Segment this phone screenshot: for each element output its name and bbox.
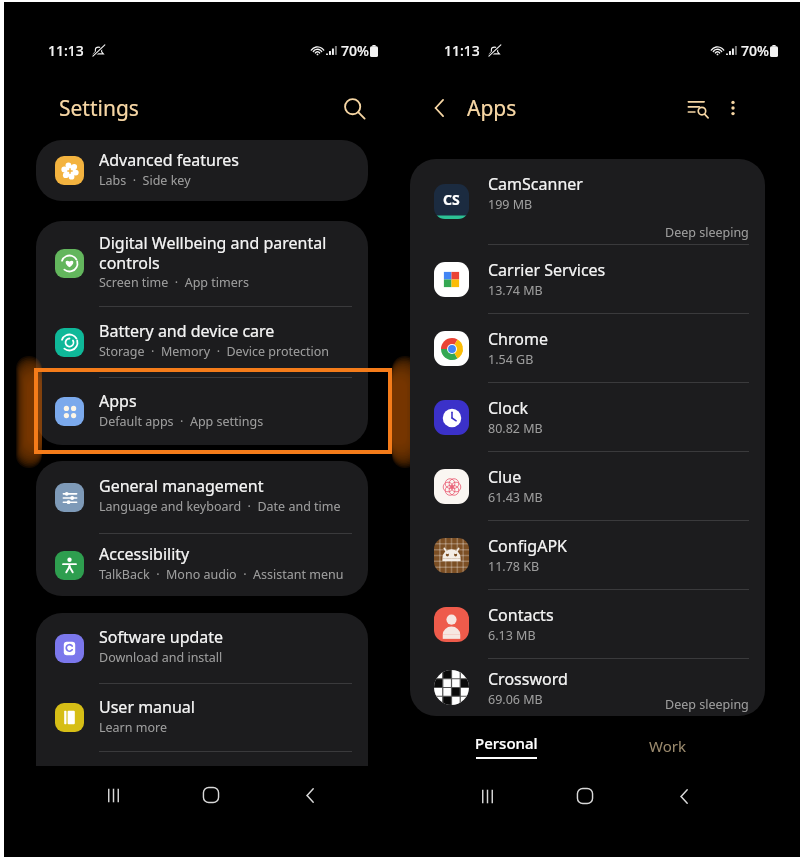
staticText: Clue <box>488 466 522 488</box>
button[interactable]: Back <box>662 774 706 818</box>
button[interactable]: Apps <box>36 378 368 445</box>
button[interactable]: Accessibility <box>36 534 368 596</box>
staticText: Apps <box>99 390 137 412</box>
staticText: CS <box>443 190 460 209</box>
button[interactable]: ConfigAPK <box>410 521 765 589</box>
button[interactable]: Clue <box>410 452 765 520</box>
staticText: Advanced features <box>99 149 239 171</box>
button[interactable]: User manual <box>36 684 368 751</box>
button[interactable]: Sort and search <box>680 90 716 126</box>
staticText: Chrome <box>488 328 548 350</box>
button[interactable]: Software update <box>36 613 368 683</box>
staticText: Digital Wellbeing and parental controls <box>99 232 327 273</box>
button[interactable]: Recents <box>91 773 135 817</box>
button[interactable]: General management <box>36 461 368 533</box>
button[interactable]: Home <box>189 773 233 817</box>
staticText: 11.78 KB <box>488 558 540 575</box>
staticText: TalkBack · Mono audio · Assistant menu <box>99 566 344 583</box>
staticText: 11:13 <box>48 41 84 60</box>
staticText: User manual <box>99 696 195 718</box>
staticText: Software update <box>99 626 224 648</box>
staticText: CamScanner <box>488 173 583 195</box>
button[interactable]: Work <box>607 716 727 776</box>
staticText: 6.13 MB <box>488 627 536 644</box>
button[interactable]: Digital Wellbeing and parental controls <box>36 221 368 306</box>
staticText: ConfigAPK <box>488 535 567 557</box>
staticText: Clock <box>488 397 529 419</box>
staticText: Battery and device care <box>99 320 275 342</box>
staticText: Crossword <box>488 668 568 690</box>
button[interactable]: Remote support <box>36 752 368 820</box>
staticText: 11:13 <box>444 41 480 60</box>
staticText: Accessibility <box>99 543 190 565</box>
staticText: Carrier Services <box>488 259 606 281</box>
button[interactable]: Crossword <box>410 659 765 716</box>
staticText: Deep sleeping <box>665 224 749 241</box>
button[interactable]: Contacts <box>410 590 765 658</box>
staticText: Remote support <box>99 764 221 786</box>
staticText: Download and install <box>99 649 223 666</box>
staticText: 199 MB <box>488 196 533 213</box>
button[interactable]: CS <box>410 159 765 244</box>
staticText: Contacts <box>488 604 554 626</box>
staticText: Personal <box>475 733 538 753</box>
button[interactable]: Advanced features <box>36 140 368 201</box>
staticText: 13.74 MB <box>488 282 543 299</box>
button[interactable]: Chrome <box>410 314 765 382</box>
staticText: Work <box>649 736 686 756</box>
staticText: Settings <box>59 94 139 123</box>
button[interactable]: Search <box>334 88 374 128</box>
button[interactable]: Back <box>422 90 458 126</box>
staticText: 1.54 GB <box>488 351 534 368</box>
staticText: Learn more <box>99 719 167 736</box>
staticText: Screen time · App timers <box>99 274 249 291</box>
button[interactable]: Recents <box>465 774 509 818</box>
staticText: Default apps · App settings <box>99 413 264 430</box>
staticText: Apps <box>467 94 517 123</box>
button[interactable]: Carrier Services <box>410 245 765 313</box>
staticText: 69.06 MB <box>488 691 543 708</box>
staticText: Language and keyboard · Date and time <box>99 498 341 515</box>
staticText: General management <box>99 475 264 497</box>
staticText: 70% <box>741 41 769 60</box>
staticText: Storage · Memory · Device protection <box>99 343 330 360</box>
button[interactable]: Home <box>563 774 607 818</box>
staticText: 70% <box>341 41 369 60</box>
staticText: Remote assistance <box>99 787 209 804</box>
button[interactable]: Back <box>288 773 332 817</box>
staticText: 61.43 MB <box>488 489 543 506</box>
button[interactable]: Battery and device care <box>36 307 368 377</box>
button[interactable]: Clock <box>410 383 765 451</box>
staticText: Deep sleeping <box>665 696 749 713</box>
button[interactable]: Personal <box>446 716 567 776</box>
staticText: 80.82 MB <box>488 420 543 437</box>
button[interactable]: More options <box>716 91 750 125</box>
staticText: Labs · Side key <box>99 172 191 189</box>
